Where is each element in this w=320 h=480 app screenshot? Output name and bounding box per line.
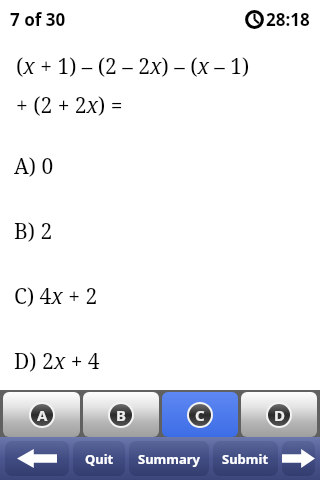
button[interactable]: C) 4x + 2: [14, 282, 320, 311]
staticText: 28:18: [266, 8, 310, 31]
staticText: B: [116, 405, 126, 425]
staticText: A) 0: [14, 152, 54, 181]
button[interactable]: Quit: [73, 441, 125, 476]
staticText: 7 of 30: [10, 8, 66, 31]
button[interactable]: Summary: [129, 441, 209, 476]
button[interactable]: Answer C: [162, 392, 238, 437]
button[interactable]: Next: [282, 441, 315, 476]
staticText: D: [274, 405, 285, 425]
button[interactable]: Submit: [213, 441, 278, 476]
button[interactable]: Previous: [5, 441, 69, 476]
staticText: C) 4x + 2: [14, 282, 98, 311]
staticText: C: [195, 405, 205, 425]
staticText: Summary: [138, 450, 200, 468]
staticText: D) 2x + 4: [14, 347, 100, 376]
staticText: (x + 1) – (2 – 2x) – (x – 1): [16, 52, 250, 81]
button[interactable]: Answer B: [83, 392, 159, 437]
button[interactable]: B) 2: [14, 217, 320, 246]
staticText: Submit: [222, 450, 269, 468]
button[interactable]: D) 2x + 4: [14, 347, 320, 376]
staticText: A: [37, 405, 48, 425]
button[interactable]: Answer A: [3, 392, 80, 437]
staticText: + (2 + 2x) =: [16, 91, 123, 120]
staticText: B) 2: [14, 217, 53, 246]
button[interactable]: A) 0: [14, 152, 320, 181]
button[interactable]: Answer D: [241, 392, 317, 437]
staticText: Quit: [85, 450, 114, 468]
